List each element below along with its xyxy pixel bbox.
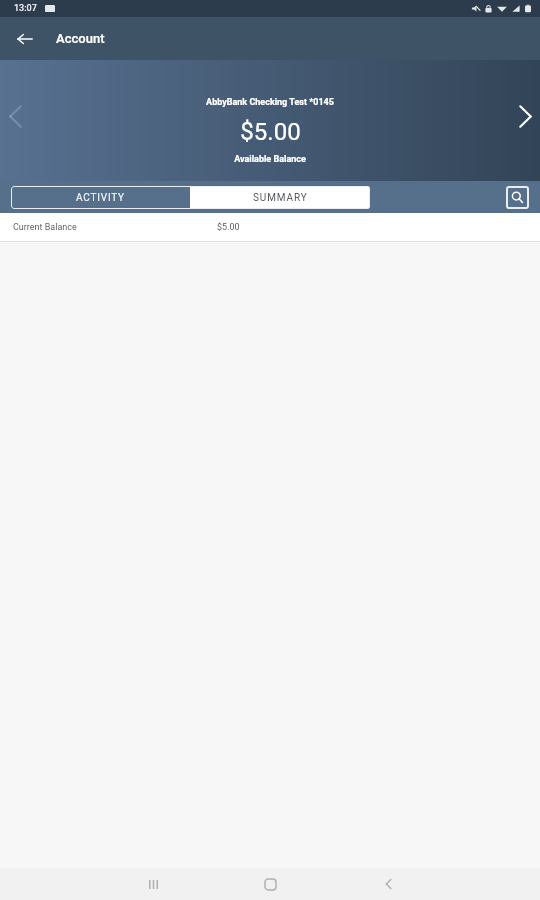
button[interactable]: SUMMARY: [190, 186, 370, 209]
button[interactable]: Home: [253, 868, 288, 900]
button[interactable]: Search: [506, 186, 529, 209]
staticText: Account: [56, 31, 105, 46]
button[interactable]: Previous account: [0, 98, 33, 134]
staticText: AbbyBank Checking Test *0145: [206, 97, 334, 108]
button[interactable]: Navigate up: [8, 22, 42, 56]
button[interactable]: Recents: [136, 868, 171, 900]
staticText: Current Balance: [13, 222, 77, 233]
staticText: ACTIVITY: [76, 192, 125, 204]
button[interactable]: ACTIVITY: [11, 186, 190, 209]
button[interactable]: Back: [371, 868, 406, 900]
button[interactable]: Next account: [507, 98, 540, 134]
staticText: $5.00: [217, 222, 240, 233]
button[interactable]: Current Balance: [0, 213, 540, 242]
staticText: Available Balance: [234, 154, 306, 165]
staticText: 13:07: [14, 3, 37, 14]
staticText: SUMMARY: [253, 192, 308, 204]
staticText: $5.00: [240, 118, 301, 146]
